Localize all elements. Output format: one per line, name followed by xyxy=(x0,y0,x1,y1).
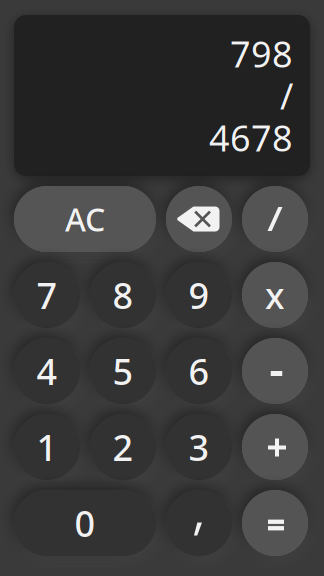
button[interactable]: x xyxy=(242,262,308,328)
staticText: 1 xyxy=(36,423,57,471)
button[interactable]: 4 xyxy=(14,338,80,404)
button[interactable]: 7 xyxy=(14,262,80,328)
staticText: 8 xyxy=(112,271,133,319)
staticText: 7 xyxy=(36,271,57,319)
button[interactable]: Decimal separator xyxy=(166,490,232,556)
button[interactable]: 3 xyxy=(166,414,232,480)
staticText: x xyxy=(265,271,285,319)
button[interactable]: 8 xyxy=(90,262,156,328)
staticText: 798 xyxy=(230,30,293,77)
staticText: AC xyxy=(65,198,105,240)
button[interactable]: 9 xyxy=(166,262,232,328)
staticText: / xyxy=(280,72,293,119)
button[interactable]: 1 xyxy=(14,414,80,480)
button[interactable]: Minus xyxy=(242,338,308,404)
staticText: 4678 xyxy=(209,114,293,161)
staticText: 3 xyxy=(188,423,209,471)
staticText: 4 xyxy=(36,347,57,395)
button[interactable]: Plus xyxy=(242,414,308,480)
button[interactable]: Delete xyxy=(166,186,232,252)
button[interactable]: 5 xyxy=(90,338,156,404)
button[interactable]: 6 xyxy=(166,338,232,404)
staticText: 2 xyxy=(112,423,133,471)
button[interactable]: AC xyxy=(14,186,156,252)
button[interactable]: 2 xyxy=(90,414,156,480)
button[interactable]: Divide xyxy=(242,186,308,252)
staticText: 5 xyxy=(112,347,133,395)
staticText: 6 xyxy=(188,347,209,395)
button[interactable]: 0 xyxy=(14,490,156,556)
staticText: 0 xyxy=(74,499,95,547)
button[interactable]: Equals xyxy=(242,490,308,556)
staticText: 9 xyxy=(188,271,209,319)
